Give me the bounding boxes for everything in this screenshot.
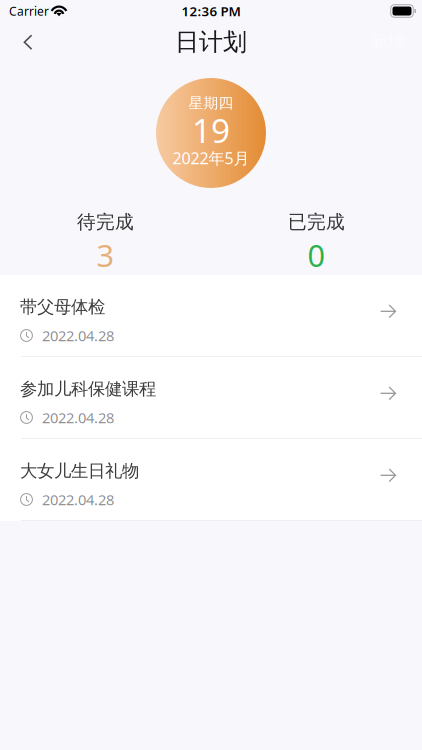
staticText: 19 — [192, 108, 230, 152]
staticText: 参加儿科保健课程 — [20, 378, 156, 400]
staticText: 待完成 — [77, 210, 134, 233]
button[interactable]: 大女儿生日礼物 — [0, 439, 422, 520]
staticText: 2022.04.28 — [42, 490, 114, 509]
staticText: 日计划 — [175, 27, 247, 57]
staticText: 大女儿生日礼物 — [20, 460, 139, 482]
button[interactable]: 返回 — [7, 22, 49, 62]
staticText: 带父母体检 — [20, 296, 105, 318]
button[interactable]: 参加儿科保健课程 — [0, 357, 422, 438]
staticText: 12:36 PM — [181, 2, 240, 20]
staticText: Carrier — [9, 3, 49, 19]
staticText: 0 — [307, 235, 325, 275]
staticText: 2022.04.28 — [42, 408, 114, 427]
staticText: 2022.04.28 — [42, 326, 114, 345]
staticText: 2022年5月 — [172, 147, 249, 169]
staticText: 已完成 — [288, 210, 345, 233]
button[interactable]: 带父母体检 — [0, 275, 422, 356]
staticText: 星期四 — [188, 94, 233, 112]
staticText: 3 — [96, 235, 114, 275]
